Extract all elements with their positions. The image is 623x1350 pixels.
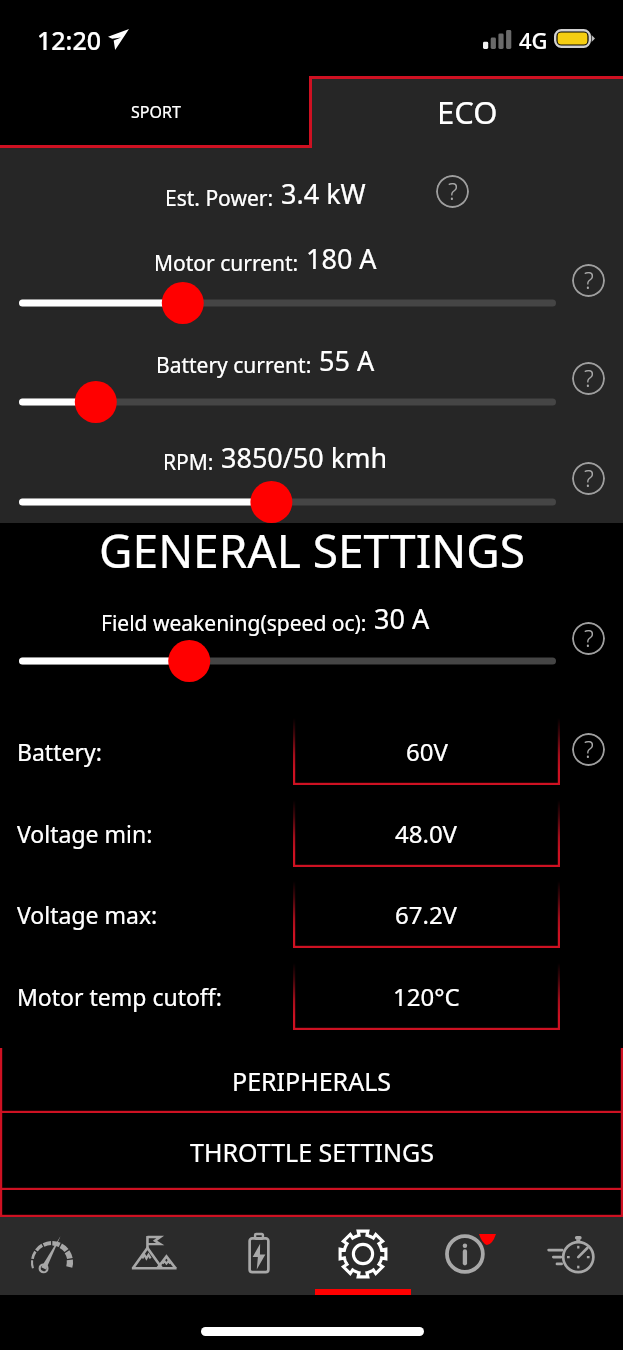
button[interactable]: Help: [572, 622, 605, 655]
button[interactable]: Slider: [0, 478, 623, 526]
staticText: 120°C: [393, 980, 460, 1013]
staticText: ?: [584, 733, 594, 764]
staticText: 12:20: [37, 23, 102, 55]
button[interactable]: Info: [415, 1217, 519, 1295]
button[interactable]: SPORT: [0, 76, 311, 148]
button[interactable]: Help: [572, 362, 605, 395]
button[interactable]: THROTTLE SETTINGS: [0, 1113, 623, 1190]
button[interactable]: 67.2V: [293, 881, 560, 948]
staticText: 60V: [406, 735, 448, 768]
button[interactable]: Help: [572, 462, 605, 495]
staticText: 30 A: [374, 600, 430, 637]
button[interactable]: ECO: [311, 76, 623, 148]
button[interactable]: Slider: [0, 637, 623, 685]
staticText: ECO: [437, 91, 498, 133]
button[interactable]: Settings: [311, 1217, 415, 1295]
staticText: ?: [584, 622, 594, 653]
staticText: Motor current:: [154, 249, 299, 278]
staticText: 180 A: [306, 240, 377, 277]
staticText: ?: [448, 175, 458, 206]
staticText: SPORT: [131, 101, 181, 123]
button[interactable]: 60V: [293, 718, 560, 785]
staticText: Field weakening(speed oc):: [101, 609, 367, 638]
staticText: ?: [584, 264, 594, 295]
staticText: 67.2V: [395, 898, 458, 931]
button[interactable]: Help: [572, 733, 605, 766]
button[interactable]: Slider: [0, 378, 623, 426]
staticText: GENERAL SETTINGS: [99, 519, 525, 579]
staticText: Voltage min:: [17, 818, 153, 849]
button[interactable]: Trips: [103, 1217, 207, 1295]
button[interactable]: Help: [436, 175, 469, 208]
staticText: ?: [584, 462, 594, 493]
button[interactable]: 48.0V: [293, 800, 560, 867]
staticText: PERIPHERALS: [232, 1064, 391, 1098]
staticText: Est. Power:: [165, 184, 274, 213]
button[interactable]: Dashboard: [0, 1217, 103, 1295]
staticText: Battery current:: [156, 351, 312, 380]
staticText: 55 A: [319, 342, 375, 379]
staticText: RPM:: [163, 448, 214, 477]
button[interactable]: Performance: [519, 1217, 623, 1295]
button[interactable]: 120°C: [293, 963, 560, 1030]
staticText: ?: [584, 362, 594, 393]
staticText: 3.4 kW: [281, 175, 366, 212]
button[interactable]: Battery: [207, 1217, 311, 1295]
button[interactable]: [0, 1190, 623, 1217]
staticText: Battery:: [17, 736, 102, 767]
staticText: 48.0V: [395, 817, 458, 850]
button[interactable]: Help: [572, 264, 605, 297]
button[interactable]: PERIPHERALS: [0, 1048, 623, 1113]
staticText: 4G: [519, 25, 548, 55]
staticText: Motor temp cutoff:: [17, 981, 222, 1012]
button[interactable]: Slider: [0, 279, 623, 327]
staticText: 3850/50 kmh: [221, 439, 388, 476]
staticText: Voltage max:: [17, 899, 158, 930]
staticText: THROTTLE SETTINGS: [190, 1135, 434, 1169]
